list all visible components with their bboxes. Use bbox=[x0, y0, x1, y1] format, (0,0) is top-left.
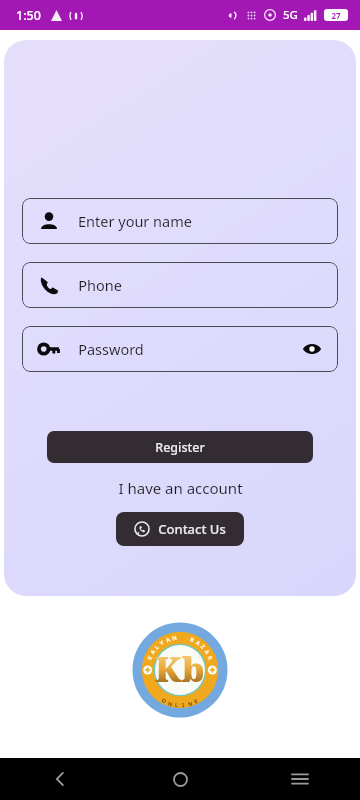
button[interactable]: Toggle password visibility bbox=[300, 337, 324, 361]
other: Kalyan Bazar Online logo bbox=[132, 622, 228, 718]
button[interactable]: Contact Us bbox=[116, 512, 244, 546]
staticText bbox=[171, 700, 175, 707]
staticText: Contact Us bbox=[158, 520, 226, 538]
staticText: A bbox=[203, 648, 211, 656]
staticText: B bbox=[189, 635, 195, 644]
staticText: N bbox=[167, 699, 174, 707]
staticText: N bbox=[187, 699, 194, 707]
staticText: 5G bbox=[283, 7, 298, 23]
button[interactable]: Phone bbox=[22, 262, 338, 308]
staticText: K bbox=[145, 655, 154, 661]
staticText: Register bbox=[155, 439, 205, 456]
staticText: R bbox=[205, 655, 214, 661]
staticText: Z bbox=[199, 643, 207, 651]
button[interactable]: Password bbox=[22, 326, 338, 372]
staticText: L bbox=[153, 643, 161, 651]
staticText: 1:50 bbox=[16, 7, 41, 24]
staticText: A bbox=[194, 639, 202, 647]
button[interactable]: Recent apps bbox=[240, 758, 360, 800]
staticText: A bbox=[165, 635, 171, 644]
staticText: Password bbox=[78, 339, 144, 359]
staticText: L bbox=[175, 701, 179, 708]
staticText bbox=[185, 700, 189, 707]
button[interactable]: I have an account bbox=[4, 478, 356, 498]
staticText: I bbox=[182, 701, 185, 708]
button[interactable]: Enter your name bbox=[22, 198, 338, 244]
staticText: I have an account bbox=[118, 478, 243, 498]
staticText: Y bbox=[158, 639, 166, 647]
staticText: Kb bbox=[155, 646, 205, 692]
staticText: E bbox=[193, 696, 199, 705]
staticText bbox=[191, 699, 195, 706]
staticText: O bbox=[161, 696, 168, 705]
staticText: A bbox=[149, 648, 157, 656]
staticText: Phone bbox=[78, 275, 122, 295]
staticText: Enter your name bbox=[78, 211, 192, 231]
button[interactable]: Home bbox=[120, 758, 240, 800]
staticText: 27 bbox=[331, 10, 341, 21]
staticText: N bbox=[171, 634, 178, 642]
button[interactable]: Back bbox=[0, 758, 120, 800]
button[interactable]: Register bbox=[47, 431, 313, 463]
staticText bbox=[165, 699, 169, 706]
